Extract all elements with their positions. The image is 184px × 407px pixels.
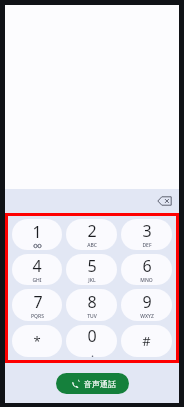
staticText: PQRS bbox=[31, 313, 44, 320]
staticText: JKL bbox=[88, 277, 96, 284]
staticText: MNO bbox=[140, 277, 153, 284]
staticText: 2 bbox=[87, 220, 97, 242]
button[interactable]: 1 bbox=[12, 219, 62, 250]
staticText: 5 bbox=[87, 255, 97, 277]
button[interactable]: 7 bbox=[12, 289, 62, 321]
staticText: 7 bbox=[33, 291, 43, 313]
staticText: TUV bbox=[87, 313, 97, 320]
button[interactable]: 音声通話 bbox=[56, 373, 129, 394]
staticText: . bbox=[91, 347, 94, 357]
button[interactable]: 0 bbox=[66, 325, 117, 357]
staticText: 1 bbox=[32, 221, 42, 243]
staticText: 音声通話 bbox=[84, 379, 116, 389]
button[interactable]: 8 bbox=[66, 289, 117, 321]
staticText: GHI bbox=[32, 277, 42, 284]
button[interactable]: Backspace bbox=[154, 191, 174, 211]
button[interactable]: 2 bbox=[66, 219, 117, 250]
staticText: # bbox=[142, 332, 151, 350]
staticText: WXYZ bbox=[140, 313, 154, 320]
button[interactable]: 4 bbox=[12, 254, 62, 285]
staticText: 9 bbox=[142, 291, 152, 313]
button[interactable]: 6 bbox=[121, 254, 172, 285]
button[interactable]: * bbox=[12, 325, 62, 357]
staticText: 8 bbox=[87, 291, 97, 313]
staticText: DEF bbox=[142, 242, 152, 249]
staticText: 3 bbox=[142, 220, 152, 242]
button[interactable]: 3 bbox=[121, 219, 172, 250]
button[interactable]: 5 bbox=[66, 254, 117, 285]
button[interactable]: # bbox=[121, 325, 172, 357]
staticText: 0 bbox=[87, 325, 97, 347]
button[interactable]: 9 bbox=[121, 289, 172, 321]
staticText: 4 bbox=[32, 255, 42, 277]
staticText: * bbox=[33, 332, 41, 350]
staticText: 6 bbox=[142, 255, 152, 277]
staticText: ABC bbox=[87, 242, 97, 249]
